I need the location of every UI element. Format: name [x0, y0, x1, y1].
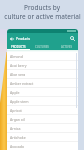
- staticText: Almond: [10, 54, 23, 59]
- button[interactable]: Avocado: [7, 142, 78, 150]
- staticText: Argan oil: [10, 117, 25, 122]
- staticText: Products by: [24, 3, 60, 12]
- button[interactable]: Acai berry: [7, 61, 78, 69]
- staticText: Apple stem: [10, 99, 29, 104]
- button[interactable]: Arnica: [7, 124, 78, 132]
- staticText: Apple: [10, 90, 20, 95]
- staticText: Arnica: [10, 126, 21, 131]
- button[interactable]: CULTURES: [30, 43, 54, 50]
- staticText: culture or active material: [4, 12, 81, 21]
- staticText: Products: [16, 36, 31, 41]
- button[interactable]: Artichoke: [7, 133, 78, 141]
- staticText: Aloe vera: [10, 72, 26, 77]
- button[interactable]: Aloe vera: [7, 70, 78, 78]
- button[interactable]: ACTIVES: [54, 43, 78, 50]
- staticText: Apricot: [10, 108, 22, 113]
- button[interactable]: Back: [8, 35, 15, 42]
- button[interactable]: Search: [69, 35, 76, 42]
- staticText: CULTURES: [35, 45, 49, 49]
- button[interactable]: Apple: [7, 88, 78, 96]
- button[interactable]: PRODUCTS: [7, 43, 30, 50]
- staticText: PRODUCTS: [11, 45, 26, 49]
- button[interactable]: Amber extract: [7, 79, 78, 87]
- staticText: Acai berry: [10, 63, 27, 68]
- button[interactable]: Almond: [7, 52, 78, 60]
- staticText: ACTIVES: [61, 45, 72, 49]
- staticText: Avocado: [10, 144, 25, 149]
- button[interactable]: Apricot: [7, 106, 78, 114]
- staticText: Amber extract: [10, 81, 34, 86]
- button[interactable]: Argan oil: [7, 115, 78, 123]
- staticText: Artichoke: [10, 135, 26, 140]
- button[interactable]: Apple stem: [7, 97, 78, 105]
